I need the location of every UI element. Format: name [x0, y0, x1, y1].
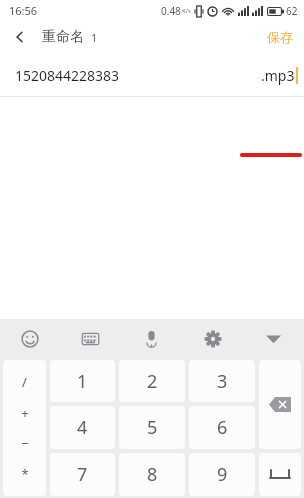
staticText: K/s — [182, 7, 191, 15]
button[interactable]: 6 — [189, 406, 255, 449]
staticText: 8 — [147, 462, 158, 487]
staticText: + — [21, 404, 29, 422]
staticText: * — [21, 465, 29, 483]
staticText: 9 — [217, 462, 228, 487]
staticText: 16:56 — [9, 3, 38, 18]
button[interactable]: 3 — [189, 360, 255, 402]
button[interactable]: 保存 — [256, 21, 304, 52]
staticText: 4 — [77, 415, 88, 440]
button[interactable]: Backspace — [259, 360, 301, 449]
button[interactable]: Keyboard — [60, 319, 121, 358]
staticText: 1520844228383 — [15, 66, 120, 85]
staticText: 重命名 — [42, 28, 84, 46]
button[interactable]: 5 — [119, 406, 185, 449]
button[interactable]: 1 — [50, 360, 115, 402]
staticText: − — [21, 434, 29, 452]
staticText: 1 — [77, 369, 88, 394]
staticText: 1 — [91, 30, 98, 45]
button[interactable]: 1520844228383 — [0, 53, 304, 97]
button[interactable]: Voice input — [121, 319, 182, 358]
staticText: / — [22, 373, 27, 391]
staticText: 2 — [147, 369, 158, 394]
staticText: 0.48 — [161, 4, 181, 18]
button[interactable]: 2 — [119, 360, 185, 402]
staticText: 62 — [286, 4, 298, 18]
button[interactable]: 9 — [189, 453, 255, 496]
button[interactable]: 7 — [50, 453, 115, 496]
staticText: .mp3 — [261, 66, 295, 85]
staticText: 保存 — [267, 29, 293, 45]
button[interactable]: / — [3, 360, 46, 496]
button[interactable]: Settings — [182, 319, 243, 358]
staticText: 7 — [77, 462, 88, 487]
button[interactable]: Emoji — [0, 319, 60, 358]
staticText: 3 — [217, 369, 228, 394]
button[interactable]: 8 — [119, 453, 185, 496]
staticText: 5 — [147, 415, 158, 440]
button[interactable]: Hide keyboard — [243, 319, 304, 358]
button[interactable]: 4 — [50, 406, 115, 449]
staticText: 6 — [217, 415, 228, 440]
button[interactable]: Back — [0, 21, 40, 52]
button[interactable]: Space — [259, 453, 301, 496]
